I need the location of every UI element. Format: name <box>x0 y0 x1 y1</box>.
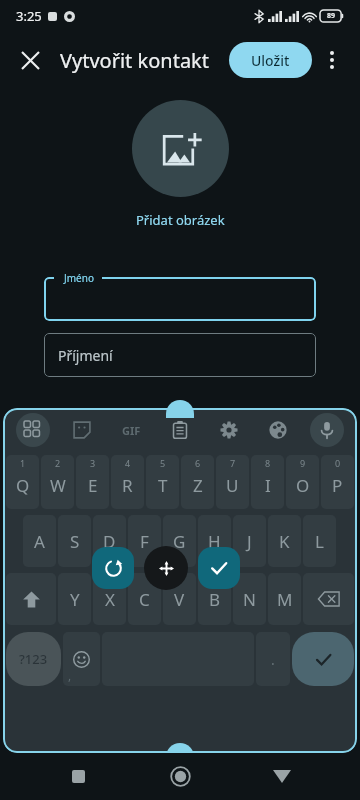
staticText: 5 <box>160 457 166 469</box>
button[interactable]: J <box>233 515 266 567</box>
button[interactable]: K <box>268 515 301 567</box>
button[interactable]: Stickers <box>57 408 106 452</box>
staticText: H <box>208 530 221 553</box>
staticText: V <box>174 588 185 611</box>
button[interactable]: G <box>163 515 196 567</box>
staticText: A <box>34 530 45 553</box>
staticText: GIF <box>122 423 141 438</box>
staticText: W <box>50 474 66 497</box>
button[interactable]: 4 <box>111 455 144 509</box>
button[interactable]: Close <box>8 38 52 82</box>
button[interactable]: Backspace <box>303 573 354 625</box>
staticText: Y <box>70 588 80 611</box>
button[interactable]: Add picture <box>132 100 229 197</box>
staticText: Z <box>193 474 203 497</box>
button[interactable]: N <box>233 573 266 625</box>
staticText: , <box>68 667 72 683</box>
staticText: 4 <box>125 457 131 469</box>
button[interactable]: X <box>93 573 126 625</box>
staticText: R <box>122 474 133 497</box>
button[interactable] <box>44 277 316 321</box>
staticText: E <box>88 474 98 497</box>
button[interactable]: ?123 <box>6 632 61 686</box>
staticText: 89 <box>327 11 336 21</box>
button[interactable]: Resize keyboard bottom <box>166 743 194 761</box>
button[interactable]: Emoji and comma <box>63 632 100 686</box>
staticText: F <box>140 530 149 553</box>
staticText: . <box>271 650 275 669</box>
staticText: 9 <box>300 457 306 469</box>
button[interactable]: D <box>93 515 126 567</box>
button[interactable]: Uložit <box>229 42 312 78</box>
button[interactable]: 8 <box>251 455 284 509</box>
button[interactable]: C <box>128 573 161 625</box>
button[interactable]: 5 <box>146 455 179 509</box>
button[interactable]: 7 <box>216 455 249 509</box>
staticText: X <box>105 588 115 611</box>
button[interactable]: M <box>268 573 301 625</box>
staticText: 8 <box>265 457 271 469</box>
staticText: I <box>265 474 271 497</box>
button[interactable]: Back <box>258 753 306 800</box>
staticText: T <box>158 474 168 497</box>
button[interactable]: Confirm keyboard position <box>198 547 240 589</box>
button[interactable]: Recents <box>54 753 102 800</box>
button[interactable]: Themes <box>253 408 302 452</box>
staticText: S <box>70 530 80 553</box>
staticText: L <box>315 530 324 553</box>
staticText: Jméno <box>64 271 94 285</box>
staticText: U <box>226 474 239 497</box>
staticText: G <box>173 530 186 553</box>
button[interactable]: B <box>198 573 231 625</box>
staticText: 3 <box>90 457 96 469</box>
button[interactable]: L <box>303 515 336 567</box>
staticText: 6 <box>195 457 201 469</box>
button[interactable]: Příjmení <box>44 333 316 377</box>
button[interactable]: Reset keyboard <box>92 547 134 589</box>
staticText: Přidat obrázek <box>136 211 225 229</box>
button[interactable]: 0 <box>321 455 354 509</box>
button[interactable]: Resize keyboard top <box>166 400 194 418</box>
staticText: 3:25 <box>16 7 42 25</box>
staticText: Vytvořit kontakt <box>60 47 209 74</box>
staticText: ?123 <box>19 650 48 668</box>
button[interactable]: Keyboard layouts <box>9 408 57 452</box>
staticText: 1 <box>20 457 26 469</box>
button[interactable]: Shift <box>6 573 56 625</box>
button[interactable]: Y <box>58 573 91 625</box>
button[interactable]: Enter <box>292 632 354 686</box>
staticText: M <box>277 588 293 611</box>
button[interactable]: More options <box>312 40 352 80</box>
button[interactable]: Home <box>156 753 204 800</box>
button[interactable]: Clipboard <box>155 408 204 452</box>
button[interactable]: Settings <box>204 408 253 452</box>
button[interactable]: 3 <box>76 455 109 509</box>
staticText: 7 <box>230 457 236 469</box>
button[interactable]: Voice input <box>302 408 351 452</box>
button[interactable]: A <box>23 515 56 567</box>
button[interactable]: S <box>58 515 91 567</box>
button[interactable]: F <box>128 515 161 567</box>
staticText: Příjmení <box>58 346 113 365</box>
button[interactable]: 1 <box>6 455 39 509</box>
staticText: Q <box>16 474 30 497</box>
staticText: P <box>332 474 343 497</box>
staticText: D <box>103 530 116 553</box>
staticText: K <box>279 530 290 553</box>
staticText: B <box>209 588 221 611</box>
staticText: 0 <box>335 457 341 469</box>
staticText: Uložit <box>251 51 290 70</box>
button[interactable]: V <box>163 573 196 625</box>
button[interactable]: 6 <box>181 455 214 509</box>
staticText: C <box>139 588 150 611</box>
button[interactable]: 2 <box>41 455 74 509</box>
button[interactable]: GIF <box>106 408 155 452</box>
button[interactable]: Move keyboard <box>144 546 188 590</box>
staticText: O <box>296 474 310 497</box>
button[interactable]: H <box>198 515 231 567</box>
staticText: J <box>247 530 252 553</box>
button[interactable]: 9 <box>286 455 319 509</box>
staticText: N <box>243 588 256 611</box>
